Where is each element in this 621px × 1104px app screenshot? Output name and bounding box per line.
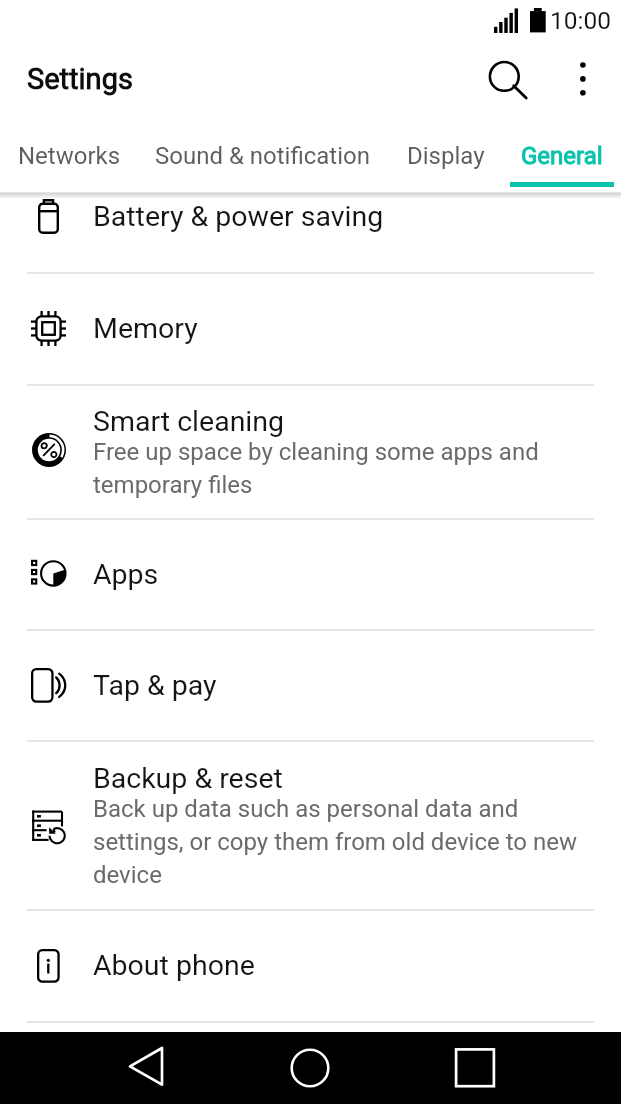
button[interactable]: Display bbox=[407, 125, 485, 177]
staticText: Free up space by cleaning some apps and … bbox=[93, 438, 539, 499]
staticText: Memory bbox=[93, 312, 198, 345]
button[interactable]: Back bbox=[110, 1032, 182, 1104]
button[interactable]: More options bbox=[560, 56, 606, 102]
button[interactable]: Search bbox=[476, 45, 532, 101]
button[interactable]: Networks bbox=[18, 125, 121, 177]
staticText: Display bbox=[407, 142, 485, 170]
staticText: Back up data such as personal data and s… bbox=[93, 795, 577, 889]
staticText: 10:00 bbox=[550, 6, 612, 35]
button[interactable]: Memory bbox=[0, 273, 621, 384]
button[interactable]: Backup & reset bbox=[0, 741, 621, 909]
button[interactable]: Tap & pay bbox=[0, 630, 621, 740]
staticText: Backup & reset bbox=[93, 762, 283, 795]
button[interactable]: About phone bbox=[0, 910, 621, 1021]
staticText: Tap & pay bbox=[93, 669, 217, 702]
staticText: About phone bbox=[93, 949, 255, 982]
staticText: Networks bbox=[18, 142, 121, 170]
button[interactable]: Apps bbox=[0, 519, 621, 629]
staticText: Smart cleaning bbox=[93, 405, 285, 438]
button[interactable]: Smart cleaning bbox=[0, 385, 621, 518]
staticText: Settings bbox=[27, 62, 133, 96]
staticText: Sound & notification bbox=[155, 142, 370, 170]
button[interactable]: General bbox=[521, 125, 603, 177]
staticText: Battery & power saving bbox=[93, 200, 384, 233]
button[interactable]: Sound & notification bbox=[155, 125, 370, 177]
button[interactable]: Home bbox=[274, 1032, 346, 1104]
button[interactable]: Recents bbox=[439, 1032, 511, 1104]
staticText: General bbox=[521, 142, 603, 170]
button[interactable]: Battery & power saving bbox=[0, 160, 621, 272]
staticText: Apps bbox=[93, 558, 159, 591]
